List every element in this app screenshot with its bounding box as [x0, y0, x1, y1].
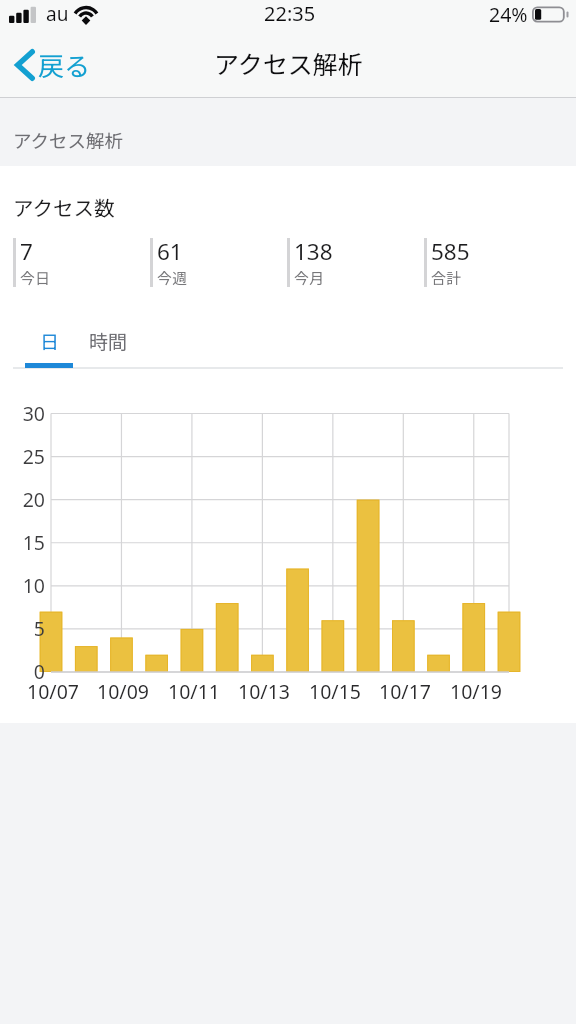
- staticText: アクセス解析: [13, 127, 124, 154]
- staticText: 10/19: [450, 678, 502, 705]
- staticText: au: [46, 1, 69, 27]
- button[interactable]: Back: [0, 41, 103, 95]
- staticText: アクセス解析: [214, 45, 363, 81]
- staticText: 戻る: [38, 46, 91, 84]
- staticText: 10/09: [97, 678, 149, 705]
- staticText: 10/11: [168, 678, 220, 705]
- staticText: アクセス数: [13, 192, 115, 222]
- button[interactable]: 時間: [78, 320, 138, 367]
- staticText: 10/17: [379, 678, 431, 705]
- staticText: 138: [294, 236, 333, 267]
- staticText: 10/13: [238, 678, 290, 705]
- staticText: 61: [157, 236, 183, 267]
- staticText: 5: [33, 615, 45, 642]
- staticText: 15: [22, 529, 45, 556]
- staticText: 25: [22, 443, 45, 470]
- staticText: 10/07: [27, 678, 79, 705]
- staticText: 今月: [294, 267, 325, 289]
- staticText: 10: [22, 572, 45, 599]
- staticText: 今週: [157, 267, 188, 289]
- staticText: 22:35: [264, 0, 316, 27]
- staticText: 585: [431, 236, 470, 267]
- staticText: 24%: [489, 1, 528, 28]
- staticText: 今日: [20, 267, 51, 289]
- staticText: 日: [40, 327, 60, 355]
- staticText: 0: [33, 658, 45, 685]
- staticText: 合計: [431, 267, 462, 289]
- staticText: 10/15: [309, 678, 361, 705]
- staticText: 30: [22, 400, 45, 427]
- button[interactable]: 日: [13, 320, 85, 367]
- staticText: 20: [22, 486, 45, 513]
- staticText: 7: [20, 236, 33, 267]
- staticText: 時間: [89, 327, 128, 355]
